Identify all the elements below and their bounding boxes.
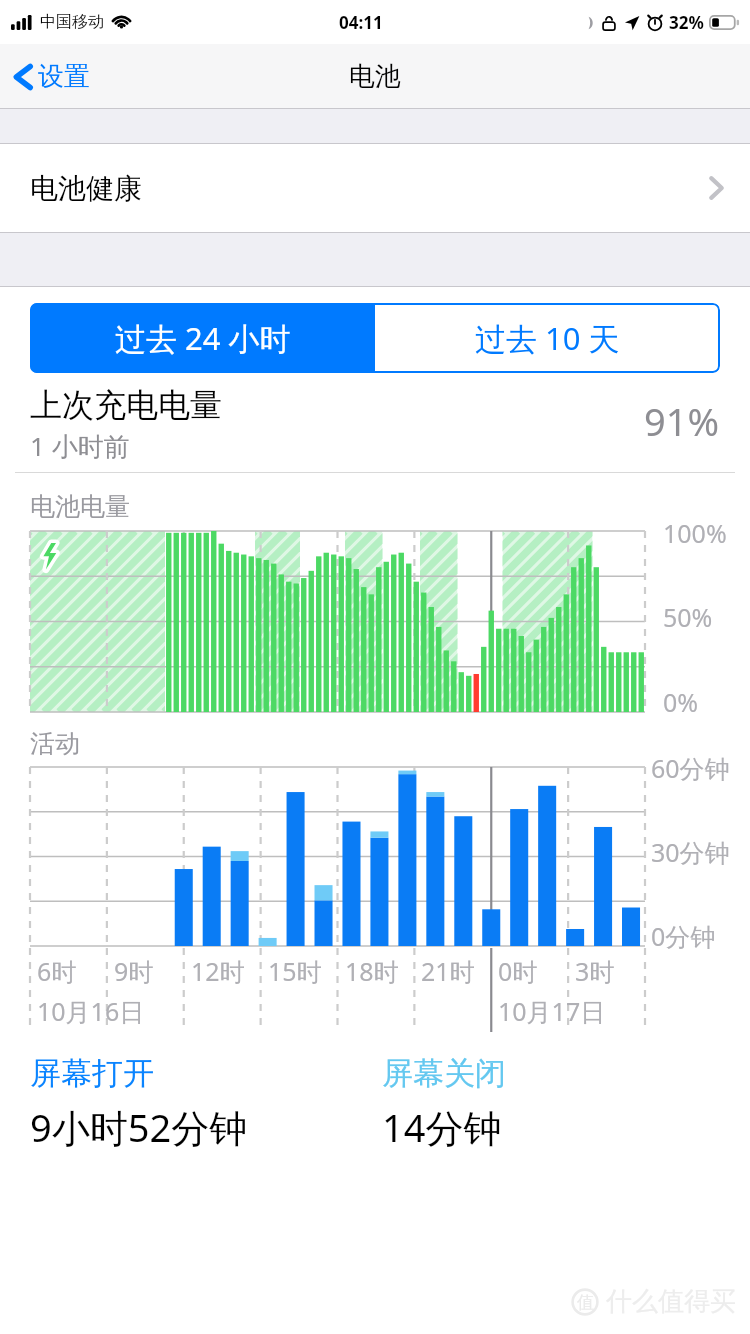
staticText: 91% xyxy=(644,395,720,447)
staticText: 屏幕关闭 xyxy=(382,1054,506,1093)
staticText: 设置 xyxy=(38,60,90,93)
staticText: 12时 xyxy=(191,954,245,988)
staticText: 60分钟 xyxy=(651,751,730,785)
staticText: 值 xyxy=(577,1292,594,1313)
staticText: 电池健康 xyxy=(30,171,142,206)
staticText: 30分钟 xyxy=(651,835,730,869)
staticText: 50% xyxy=(663,600,713,634)
staticText: 0时 xyxy=(498,954,538,988)
staticText: 0% xyxy=(663,685,699,719)
staticText: 3时 xyxy=(575,954,615,988)
staticText: 过去 24 小时 xyxy=(115,317,291,359)
staticText: 04:11 xyxy=(339,11,383,34)
staticText: 电池电量 xyxy=(30,491,130,522)
staticText: 屏幕打开 xyxy=(30,1054,154,1093)
staticText: 10月17日 xyxy=(498,994,606,1028)
staticText: 活动 xyxy=(30,728,80,759)
staticText: 过去 10 天 xyxy=(475,317,620,359)
staticText: 电池 xyxy=(349,60,401,93)
button[interactable]: 设置 xyxy=(0,50,106,103)
staticText: 上次充电电量 xyxy=(30,385,222,425)
staticText: 6时 xyxy=(37,954,77,988)
staticText: 10月16日 xyxy=(37,994,145,1028)
staticText: 100% xyxy=(663,516,727,550)
button[interactable]: 过去 10 天 xyxy=(375,303,720,373)
staticText: 1 小时前 xyxy=(30,428,130,464)
staticText: 18时 xyxy=(345,954,399,988)
staticText: 中国移动 xyxy=(40,12,104,32)
staticText: 21时 xyxy=(421,954,475,988)
button[interactable]: 电池健康 xyxy=(0,144,750,232)
staticText: 14分钟 xyxy=(382,1101,502,1153)
staticText: 15时 xyxy=(268,954,322,988)
staticText: 32% xyxy=(669,11,704,34)
staticText: 0分钟 xyxy=(651,919,716,953)
staticText: 9时 xyxy=(114,954,154,988)
button[interactable]: 过去 24 小时 xyxy=(30,303,375,373)
staticText: 什么值得买 xyxy=(606,1285,736,1318)
staticText: 9小时52分钟 xyxy=(30,1101,248,1153)
